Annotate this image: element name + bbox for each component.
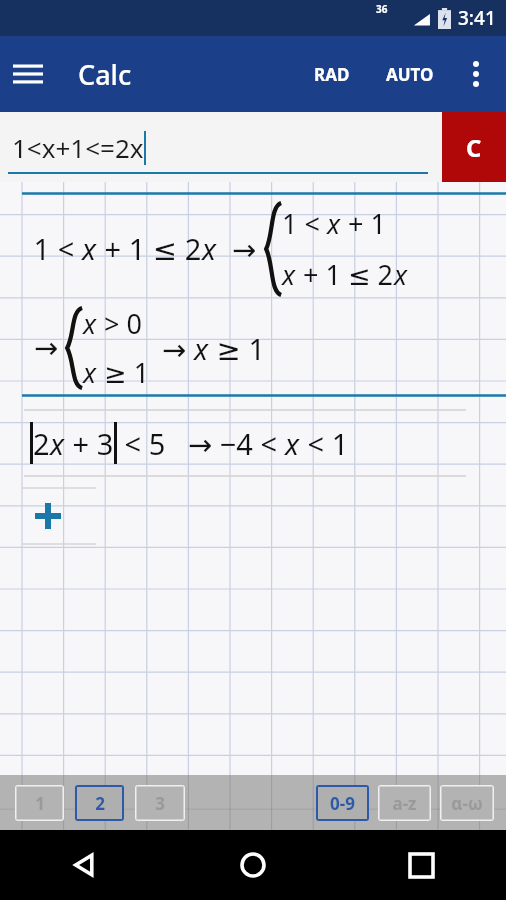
button[interactable]: 0-9 <box>316 785 369 821</box>
staticText: x <box>83 354 97 391</box>
staticText: → <box>34 331 59 365</box>
button[interactable]: RAD <box>302 49 362 100</box>
staticText: x <box>327 205 341 242</box>
staticText: 3:41 <box>458 5 496 31</box>
staticText: → <box>162 329 194 368</box>
staticText: C <box>466 131 482 164</box>
button[interactable]: Home <box>168 830 337 900</box>
button[interactable]: 2 <box>0 409 506 477</box>
staticText: RAD <box>314 63 350 86</box>
staticText: 1 <box>35 792 45 815</box>
staticText: x <box>82 229 97 268</box>
staticText: AUTO <box>386 63 434 86</box>
staticText: 2 <box>95 792 105 815</box>
button[interactable]: 1 < <box>0 192 506 397</box>
staticText: + 1 ≤ 2 <box>296 256 394 293</box>
staticText: < 5 → −4 < <box>117 424 285 463</box>
staticText: a-z <box>392 792 417 815</box>
staticText: > 0 <box>97 305 142 342</box>
button[interactable]: Menu <box>0 46 56 102</box>
staticText: → <box>217 229 264 268</box>
button[interactable]: Add expression <box>0 487 96 545</box>
staticText: x <box>83 305 97 342</box>
staticText: < 1 <box>300 424 349 463</box>
button[interactable]: Recent apps <box>337 830 506 900</box>
button[interactable]: AUTO <box>374 49 446 100</box>
staticText: + 3 <box>65 424 114 463</box>
staticText: x <box>394 256 408 293</box>
button[interactable]: C <box>442 112 506 182</box>
staticText: x <box>285 424 300 463</box>
button[interactable]: Back <box>0 830 168 900</box>
button[interactable]: More options <box>452 50 500 98</box>
staticText: 3 <box>155 792 165 815</box>
staticText: 1 < <box>26 229 82 268</box>
button[interactable]: 3 <box>135 785 185 821</box>
staticText: 36 <box>376 2 388 16</box>
staticText: x <box>202 229 217 268</box>
button[interactable]: 1<x+1<=2x <box>0 112 442 182</box>
staticText: x <box>194 329 209 368</box>
button[interactable]: 2 <box>75 785 124 821</box>
staticText: ≥ 1 <box>97 354 150 391</box>
staticText: + 1 <box>341 205 386 242</box>
staticText: α-ω <box>451 792 483 815</box>
staticText: 1<x+1<=2x <box>12 130 144 165</box>
button[interactable]: 1 <box>15 785 64 821</box>
staticText: + 1 ≤ 2 <box>97 229 202 268</box>
button[interactable]: a-z <box>378 785 431 821</box>
staticText: x <box>50 424 65 463</box>
staticText: ≥ 1 <box>209 329 265 368</box>
staticText: 0-9 <box>330 792 355 815</box>
staticText: x <box>282 256 296 293</box>
staticText: Calc <box>78 56 132 93</box>
button[interactable]: α-ω <box>440 785 494 821</box>
staticText: 2 <box>33 424 50 463</box>
staticText: 1 < <box>282 205 327 242</box>
